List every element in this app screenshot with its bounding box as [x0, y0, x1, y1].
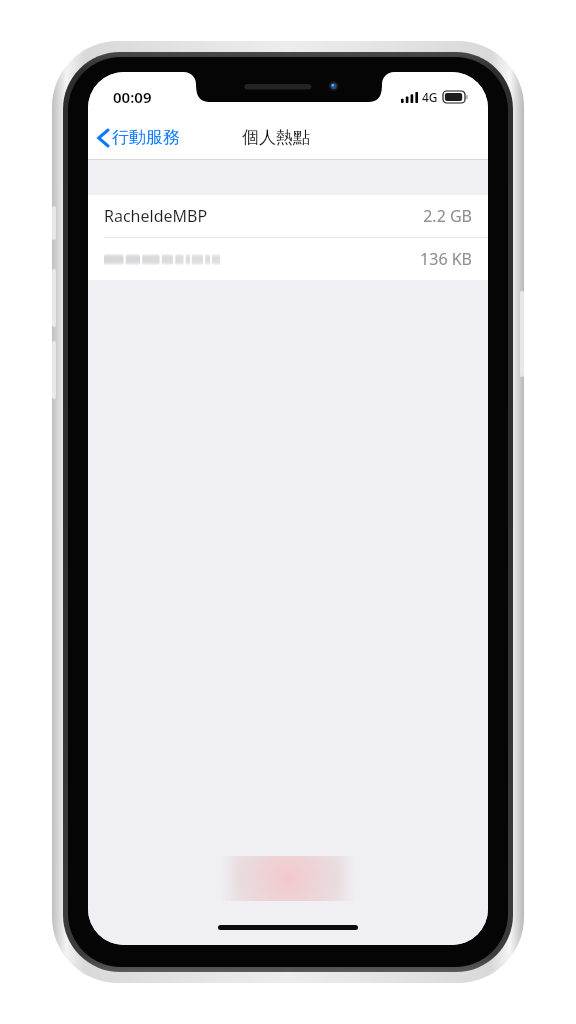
staticText: 00:09 [113, 87, 152, 107]
staticText: RacheldeMBP [104, 205, 208, 227]
button[interactable]: 行動服務 [88, 116, 190, 159]
button[interactable]: 136 KB [88, 238, 488, 280]
staticText: 136 KB [420, 248, 472, 270]
staticText: 個人熱點 [242, 127, 310, 148]
staticText: 行動服務 [112, 127, 180, 148]
staticText: 4G [422, 89, 438, 105]
button[interactable]: RacheldeMBP [88, 195, 488, 237]
staticText: 2.2 GB [423, 205, 472, 227]
